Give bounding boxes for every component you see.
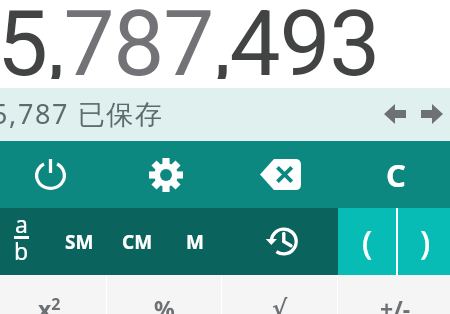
button[interactable]: Previous: [376, 94, 413, 134]
other: History: [264, 224, 299, 259]
button[interactable]: Next: [413, 94, 450, 134]
staticText: C: [386, 154, 406, 196]
staticText: x2: [38, 293, 61, 314]
staticText: +/-: [380, 293, 411, 314]
staticText: b: [14, 235, 29, 266]
staticText: √: [272, 295, 288, 314]
staticText: CM: [122, 229, 153, 255]
button[interactable]: History: [224, 208, 338, 275]
staticText: a: [15, 208, 28, 239]
other: Right: [421, 104, 443, 124]
staticText: ): [420, 219, 431, 264]
other: Backspace: [260, 159, 301, 190]
staticText: 5,787,493: [0, 0, 380, 79]
button[interactable]: Fraction: [0, 208, 50, 275]
button[interactable]: ): [398, 208, 450, 275]
staticText: M: [186, 229, 204, 255]
button[interactable]: √: [222, 275, 337, 314]
other: Left: [384, 104, 406, 124]
button[interactable]: M: [166, 208, 224, 275]
button[interactable]: Settings: [108, 141, 223, 208]
button[interactable]: C: [338, 141, 450, 208]
button[interactable]: x2: [0, 275, 106, 314]
button[interactable]: SM: [50, 208, 108, 275]
other: Fraction: [14, 203, 29, 268]
button[interactable]: Power: [0, 141, 108, 208]
button[interactable]: +/-: [338, 275, 450, 314]
button[interactable]: (: [338, 208, 396, 275]
button[interactable]: %: [107, 275, 221, 314]
button[interactable]: CM: [108, 208, 166, 275]
other: Power: [35, 159, 66, 190]
staticText: 5,787 已保存: [0, 95, 164, 132]
staticText: (: [362, 219, 373, 264]
staticText: SM: [65, 229, 94, 255]
staticText: %: [154, 293, 175, 314]
other: Settings: [149, 158, 183, 192]
button[interactable]: Backspace: [223, 141, 338, 208]
